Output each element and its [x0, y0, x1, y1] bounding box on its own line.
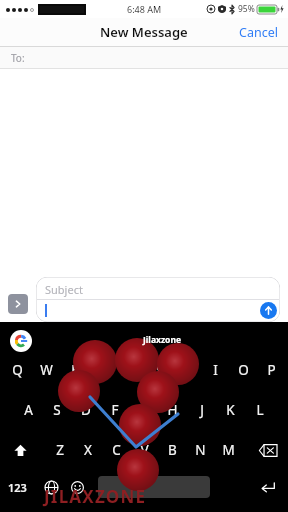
staticText: F — [111, 401, 119, 419]
button[interactable]: Subject — [36, 277, 280, 322]
staticText: G — [139, 401, 149, 419]
staticText: D — [81, 401, 91, 419]
staticText: W — [40, 361, 53, 379]
button[interactable]: Emoji — [68, 478, 86, 496]
staticText: Cancel — [239, 24, 278, 41]
button[interactable]: Return — [258, 477, 278, 497]
staticText: J — [200, 401, 204, 419]
staticText: U — [182, 361, 192, 379]
button[interactable]: L — [245, 400, 274, 420]
staticText: New Message — [100, 23, 188, 41]
staticText: T — [127, 361, 135, 379]
button[interactable]: B — [158, 440, 186, 460]
staticText: JILAXZONE — [44, 485, 147, 508]
button[interactable]: Space — [98, 476, 210, 498]
button[interactable]: 123 — [8, 480, 27, 495]
button[interactable]: J — [187, 400, 216, 420]
button[interactable]: A — [14, 400, 42, 420]
staticText: H — [167, 401, 178, 419]
staticText: 6:48 AM — [127, 3, 162, 15]
button[interactable]: R — [89, 360, 117, 380]
button[interactable]: F — [100, 400, 129, 420]
staticText: Subject — [45, 282, 83, 297]
staticText: S — [53, 401, 61, 419]
button[interactable]: M — [214, 440, 242, 460]
staticText: N — [195, 441, 206, 459]
button[interactable]: T — [117, 360, 145, 380]
button[interactable]: Change keyboard language — [42, 478, 60, 496]
button[interactable]: Cancel — [229, 20, 288, 45]
button[interactable]: To: — [0, 47, 288, 68]
staticText: 123 — [8, 480, 27, 495]
button[interactable]: I — [201, 360, 229, 380]
staticText: L — [256, 401, 264, 419]
staticText: P — [267, 361, 276, 379]
staticText: I — [213, 361, 218, 379]
button[interactable]: Z — [46, 440, 74, 460]
staticText: Z — [56, 441, 64, 459]
staticText: A — [24, 401, 33, 419]
button[interactable]: X — [74, 440, 102, 460]
button[interactable]: U — [173, 360, 201, 380]
button[interactable]: Y — [145, 360, 173, 380]
button[interactable]: Backspace — [256, 441, 280, 459]
button[interactable]: P — [257, 360, 285, 380]
staticText: To: — [11, 51, 25, 65]
button[interactable]: Show more apps — [8, 294, 28, 314]
button[interactable]: Q — [3, 360, 32, 380]
button[interactable]: E — [61, 360, 89, 380]
staticText: 95% — [238, 3, 255, 15]
staticText: M — [222, 441, 235, 459]
button[interactable]: H — [158, 400, 187, 420]
button[interactable]: V — [130, 440, 158, 460]
staticText: X — [84, 441, 92, 459]
button[interactable]: Google search — [10, 330, 32, 352]
staticText: C — [112, 441, 121, 459]
button[interactable]: C — [102, 440, 130, 460]
staticText: O — [238, 361, 249, 379]
button[interactable]: K — [216, 400, 245, 420]
staticText: R — [99, 361, 108, 379]
staticText: K — [226, 401, 235, 419]
staticText: Y — [155, 361, 163, 379]
staticText: B — [168, 441, 177, 459]
button[interactable]: Send — [260, 302, 277, 319]
staticText: Jilaxzone — [143, 334, 181, 346]
staticText: E — [71, 361, 79, 379]
button[interactable]: D — [71, 400, 100, 420]
button[interactable]: N — [186, 440, 214, 460]
button[interactable]: W — [32, 360, 61, 380]
button[interactable]: S — [42, 400, 71, 420]
staticText: Q — [12, 361, 23, 379]
staticText: V — [140, 441, 149, 459]
button[interactable]: G — [129, 400, 158, 420]
button[interactable]: O — [229, 360, 257, 380]
button[interactable]: Shift — [10, 440, 30, 460]
